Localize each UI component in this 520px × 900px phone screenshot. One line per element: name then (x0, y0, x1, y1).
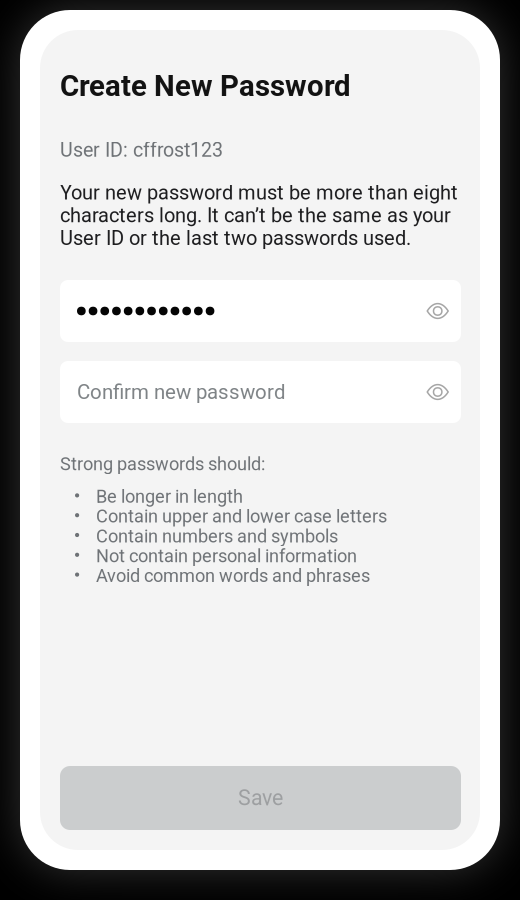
staticText: Contain upper and lower case letters (96, 506, 387, 527)
staticText: Not contain personal information (96, 545, 357, 567)
staticText: Create New Password (60, 69, 351, 103)
staticText: Be longer in length (96, 486, 243, 507)
staticText: User ID: cffrost123 (60, 138, 223, 161)
button[interactable]: New password (60, 280, 461, 342)
staticText: Save (238, 785, 283, 810)
staticText: characters long. It can’t be the same as… (60, 204, 451, 227)
staticText: Strong passwords should: (60, 453, 265, 475)
staticText: User ID or the last two passwords used. (60, 226, 411, 250)
button[interactable]: Save (60, 766, 461, 830)
staticText: Contain numbers and symbols (96, 526, 338, 547)
button[interactable]: Confirm new password (60, 361, 461, 423)
staticText: Confirm new password (77, 380, 286, 404)
staticText: Avoid common words and phrases (96, 565, 370, 586)
staticText: Your new password must be more than eigh… (60, 181, 458, 204)
